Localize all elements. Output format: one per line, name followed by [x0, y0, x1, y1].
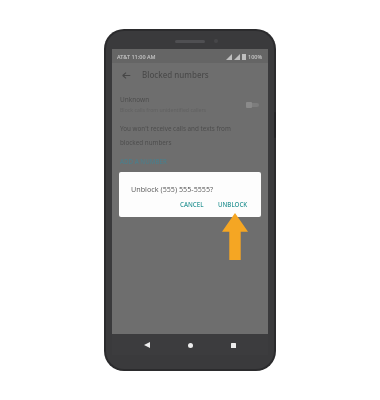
staticText: Block calls from unidentified callers — [120, 106, 207, 113]
staticText: 100% — [248, 53, 263, 60]
button[interactable]: Home — [182, 337, 198, 353]
staticText: AT&T 11:00 AM — [117, 53, 156, 60]
staticText: blocked numbers — [120, 138, 172, 147]
button[interactable]: ADD A NUMBER — [120, 157, 167, 165]
staticText: Unknown — [120, 95, 150, 104]
button[interactable]: Unknown — [112, 92, 268, 116]
staticText: You won't receive calls and texts from — [120, 124, 231, 133]
staticText: ADD A NUMBER — [120, 157, 167, 165]
button[interactable]: UNBLOCK — [213, 197, 253, 211]
button[interactable]: Back — [118, 67, 134, 83]
staticText: UNBLOCK — [218, 200, 248, 208]
button[interactable]: Block unknown callers toggle — [246, 100, 260, 109]
staticText: CANCEL — [180, 200, 204, 208]
staticText: Blocked numbers — [142, 69, 209, 80]
button[interactable]: CANCEL — [175, 197, 209, 211]
button[interactable]: Back — [139, 337, 155, 353]
staticText: Unblock (555) 555-5555? — [131, 184, 214, 194]
button[interactable]: Recent apps — [225, 337, 241, 353]
